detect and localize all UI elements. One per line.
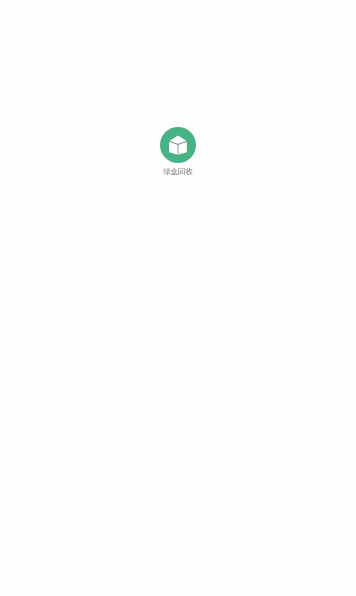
staticText: 绿盒回收: [163, 167, 193, 176]
button[interactable]: 绿盒回收 app logo: [160, 127, 196, 163]
